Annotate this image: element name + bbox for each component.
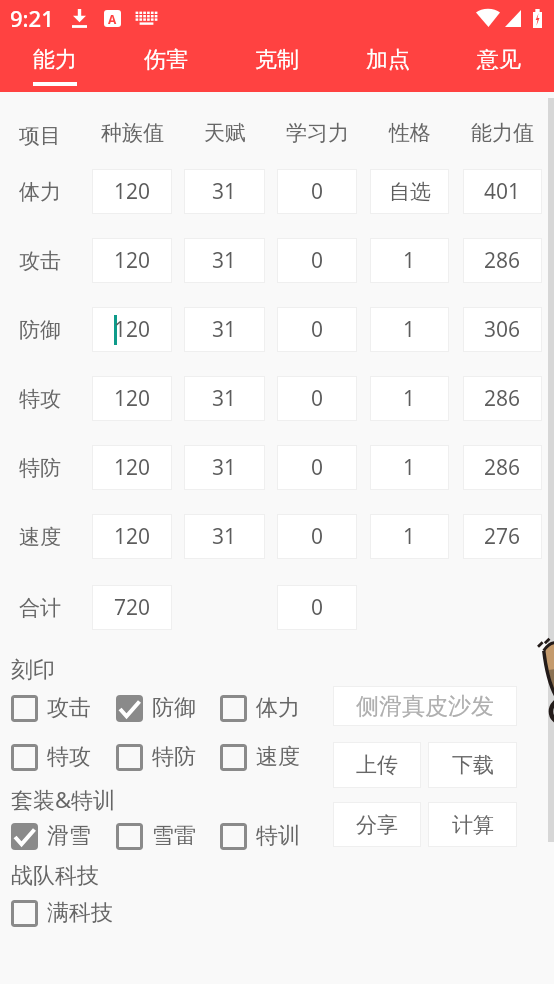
- staticText: 特攻: [47, 743, 91, 771]
- staticText: 攻击: [47, 694, 91, 722]
- button[interactable]: 攻击: [11, 694, 91, 722]
- button[interactable]: 速度: [220, 743, 300, 771]
- staticText: 0: [311, 522, 324, 551]
- staticText: 0: [311, 453, 324, 482]
- staticText: 720: [114, 593, 151, 622]
- staticText: 体力: [256, 694, 300, 722]
- staticText: 天赋: [204, 120, 246, 146]
- button[interactable]: 120: [92, 376, 172, 421]
- button[interactable]: 1: [370, 376, 449, 421]
- staticText: 31: [212, 522, 237, 551]
- button[interactable]: Floating assistant: [535, 641, 554, 729]
- staticText: 能力值: [471, 120, 534, 146]
- button[interactable]: 伤害: [110, 36, 221, 92]
- button[interactable]: 0: [277, 169, 357, 214]
- button[interactable]: 下载: [428, 742, 517, 788]
- button[interactable]: 滑雪: [11, 822, 91, 850]
- staticText: 体力: [19, 179, 61, 205]
- staticText: 合计: [19, 595, 61, 621]
- button[interactable]: 31: [184, 307, 265, 352]
- staticText: 下载: [452, 752, 494, 778]
- staticText: 意见: [477, 46, 521, 74]
- staticText: 自选: [389, 179, 431, 205]
- button[interactable]: 体力: [220, 694, 300, 722]
- staticText: 滑雪: [47, 822, 91, 850]
- button[interactable]: 0: [277, 376, 357, 421]
- button[interactable]: 分享: [333, 802, 421, 847]
- button[interactable]: 上传: [333, 742, 421, 788]
- staticText: 31: [212, 384, 237, 413]
- button[interactable]: 1: [370, 307, 449, 352]
- staticText: 速度: [256, 743, 300, 771]
- button[interactable]: 能力: [0, 36, 110, 92]
- button[interactable]: 特训: [220, 822, 300, 850]
- staticText: 速度: [19, 524, 61, 550]
- button[interactable]: 满科技: [11, 899, 113, 927]
- staticText: 1: [403, 315, 416, 344]
- staticText: 31: [212, 246, 237, 275]
- button[interactable]: 401: [463, 169, 542, 214]
- button[interactable]: 加点: [332, 36, 443, 92]
- staticText: 0: [311, 177, 324, 206]
- button[interactable]: 雪雷: [116, 822, 196, 850]
- staticText: 120: [114, 177, 151, 206]
- button[interactable]: 306: [463, 307, 542, 352]
- button[interactable]: 自选: [370, 169, 449, 214]
- staticText: 伤害: [144, 46, 188, 74]
- staticText: 31: [212, 177, 237, 206]
- button[interactable]: 0: [277, 238, 357, 283]
- button[interactable]: 31: [184, 376, 265, 421]
- staticText: 能力: [33, 46, 77, 74]
- staticText: 克制: [255, 46, 299, 74]
- staticText: 性格: [389, 120, 431, 146]
- button[interactable]: 720: [92, 585, 172, 630]
- staticText: 9:21: [10, 3, 54, 33]
- button[interactable]: 意见: [443, 36, 554, 92]
- button[interactable]: 侧滑真皮沙发: [333, 686, 517, 726]
- button[interactable]: 31: [184, 238, 265, 283]
- button[interactable]: 120: [92, 169, 172, 214]
- button[interactable]: 31: [184, 445, 265, 490]
- staticText: 120: [114, 522, 151, 551]
- button[interactable]: 计算: [428, 802, 517, 847]
- button[interactable]: 31: [184, 169, 265, 214]
- staticText: 特防: [19, 455, 61, 481]
- button[interactable]: 120: [92, 238, 172, 283]
- button[interactable]: 特攻: [11, 743, 91, 771]
- staticText: 286: [484, 453, 521, 482]
- button[interactable]: 特防: [116, 743, 196, 771]
- staticText: 刻印: [11, 656, 55, 684]
- staticText: 0: [311, 384, 324, 413]
- staticText: 加点: [366, 46, 410, 74]
- staticText: 120: [114, 246, 151, 275]
- button[interactable]: 0: [277, 585, 357, 630]
- button[interactable]: 防御: [116, 694, 196, 722]
- staticText: 0: [311, 593, 324, 622]
- staticText: 防御: [152, 694, 196, 722]
- button[interactable]: 1: [370, 238, 449, 283]
- button[interactable]: 0: [277, 514, 357, 559]
- staticText: 上传: [356, 752, 398, 778]
- button[interactable]: 120: [92, 445, 172, 490]
- button[interactable]: 286: [463, 445, 542, 490]
- button[interactable]: 120: [92, 307, 172, 352]
- staticText: 项目: [19, 123, 61, 149]
- button[interactable]: 1: [370, 445, 449, 490]
- button[interactable]: 1: [370, 514, 449, 559]
- button[interactable]: 286: [463, 376, 542, 421]
- button[interactable]: 31: [184, 514, 265, 559]
- button[interactable]: 120: [92, 514, 172, 559]
- staticText: 1: [403, 522, 416, 551]
- staticText: 120: [114, 315, 151, 344]
- staticText: 种族值: [101, 120, 164, 146]
- button[interactable]: 0: [277, 307, 357, 352]
- button[interactable]: 0: [277, 445, 357, 490]
- staticText: 学习力: [286, 120, 349, 146]
- staticText: 雪雷: [152, 822, 196, 850]
- staticText: 套装&特训: [11, 784, 116, 814]
- staticText: 286: [484, 246, 521, 275]
- button[interactable]: 286: [463, 238, 542, 283]
- button[interactable]: 276: [463, 514, 542, 559]
- button[interactable]: 克制: [221, 36, 332, 92]
- staticText: 计算: [452, 812, 494, 838]
